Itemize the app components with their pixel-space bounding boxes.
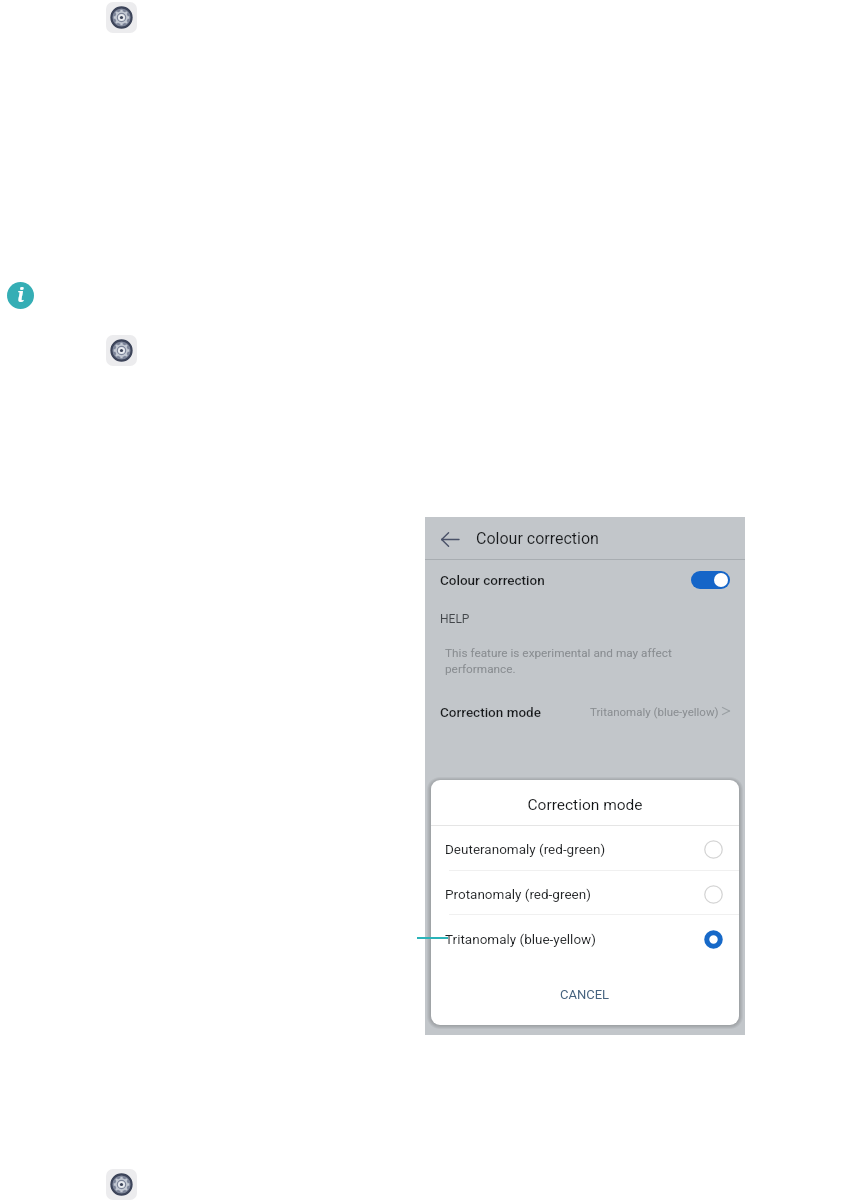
button[interactable]: Settings (106, 1169, 137, 1200)
button[interactable]: Information (7, 282, 34, 309)
button[interactable] (431, 869, 739, 914)
staticText: Colour correction (476, 529, 599, 548)
button[interactable] (431, 914, 739, 959)
button[interactable]: Back (434, 521, 466, 553)
staticText: Colour correction (440, 572, 545, 588)
staticText: Tritanomaly (blue-yellow) (445, 931, 596, 947)
button[interactable] (425, 697, 745, 729)
button[interactable] (431, 824, 739, 869)
staticText: Tritanomaly (blue-yellow) (590, 705, 719, 718)
button[interactable]: Settings (106, 2, 137, 33)
staticText: This feature is experimental and may aff… (445, 646, 672, 676)
staticText: i (17, 282, 24, 308)
staticText: Deuteranomaly (red-green) (445, 841, 606, 857)
button[interactable] (425, 560, 745, 602)
staticText: CANCEL (560, 987, 610, 1002)
staticText: Protanomaly (red-green) (445, 886, 591, 902)
button[interactable]: CANCEL (431, 975, 739, 1013)
staticText: Correction mode (440, 704, 541, 720)
staticText: Correction mode (431, 796, 739, 814)
staticText: HELP (440, 612, 470, 626)
button[interactable]: Settings (106, 335, 137, 366)
